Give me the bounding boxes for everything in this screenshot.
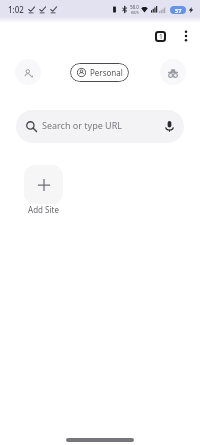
staticText: Personal: [90, 67, 123, 78]
staticText: 57: [175, 7, 182, 14]
staticText: Search or type URL: [42, 119, 123, 131]
button[interactable]: Search or type URL: [16, 110, 184, 143]
staticText: 58.0: [130, 4, 139, 10]
button[interactable]: More options: [174, 24, 198, 48]
staticText: 1:02: [8, 4, 24, 15]
button[interactable]: Search with your voice: [155, 110, 183, 143]
button[interactable]: Add shortcut: [24, 165, 63, 204]
button[interactable]: Switch or close tabs, 1 tab: [148, 24, 172, 48]
button[interactable]: Sign in: [15, 59, 41, 85]
staticText: Add Site: [28, 204, 59, 215]
button[interactable]: Personal: [70, 63, 129, 82]
staticText: 1: [159, 32, 163, 41]
staticText: KB/S: [131, 10, 139, 15]
button[interactable]: Open incognito tab: [160, 59, 186, 85]
